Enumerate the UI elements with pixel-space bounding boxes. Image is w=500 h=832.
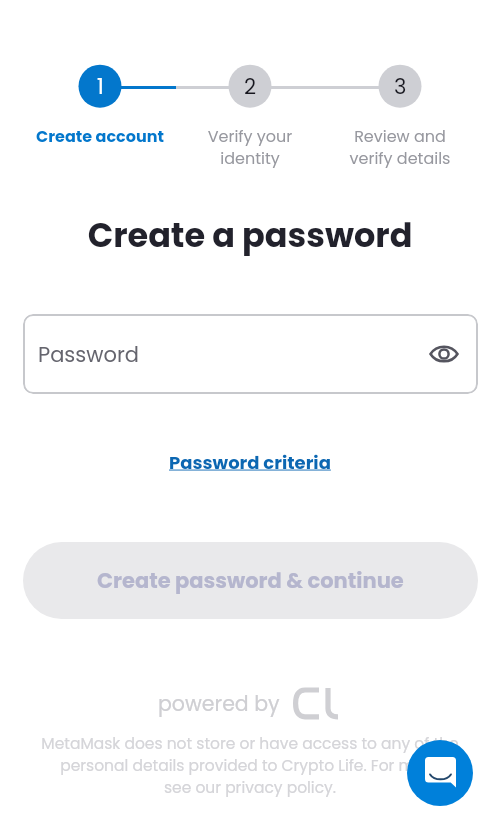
staticText: 1	[97, 72, 104, 101]
button[interactable]: Create password & continue	[23, 542, 478, 619]
staticText: Create password & continue	[97, 566, 404, 595]
staticText: 3	[394, 72, 407, 101]
button[interactable]: Create account	[20, 125, 180, 147]
button[interactable]: Password criteria	[165, 446, 335, 479]
staticText: Review and verify details	[340, 125, 460, 170]
staticText: 2	[244, 72, 257, 101]
staticText: Create a password	[0, 212, 500, 259]
button[interactable]: Show password	[422, 332, 466, 376]
staticText: Password	[38, 340, 139, 369]
staticText: Verify your identity	[190, 125, 310, 170]
button[interactable]: Open chat	[407, 740, 473, 806]
button[interactable]: Verify your identity	[190, 125, 310, 170]
staticText: MetaMask does not store or have access t…	[0, 733, 500, 799]
button[interactable]: Review and verify details	[340, 125, 460, 170]
button[interactable]: Password	[23, 314, 478, 394]
staticText: powered by	[158, 689, 280, 718]
staticText: Create account	[36, 125, 164, 147]
